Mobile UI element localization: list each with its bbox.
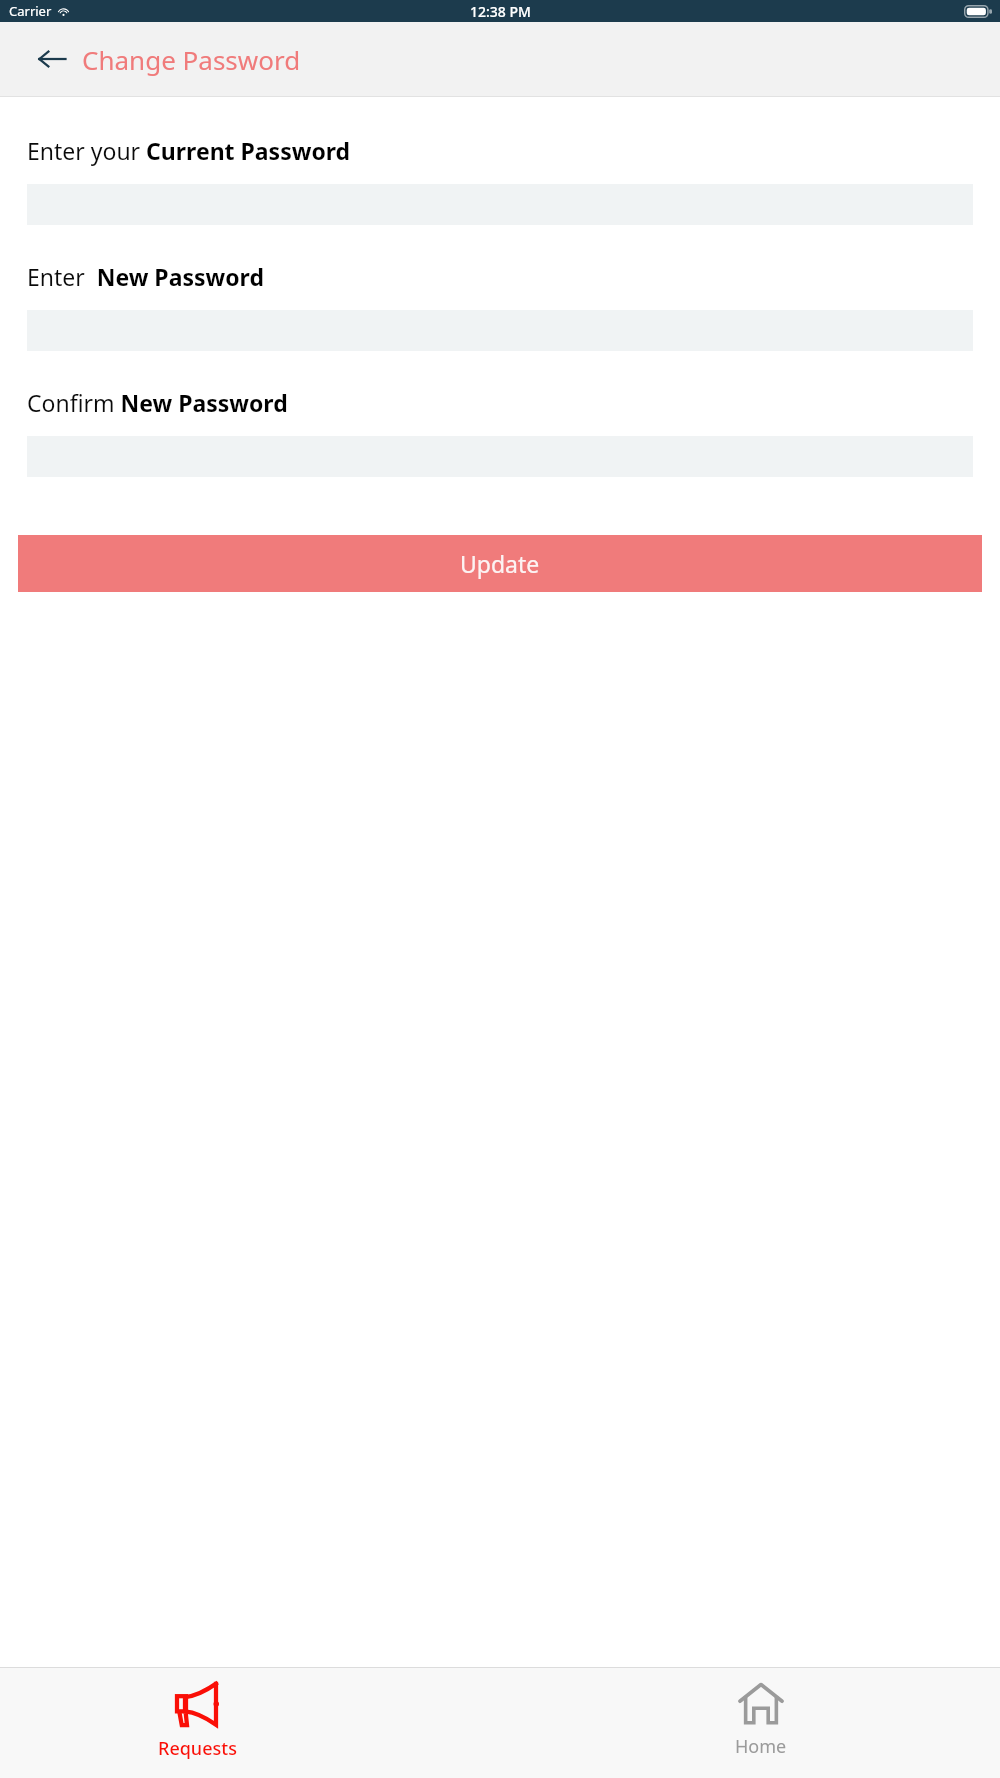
staticText: Home	[735, 1734, 787, 1759]
button[interactable]: Update	[18, 535, 982, 592]
staticText: Confirm New Password	[27, 387, 288, 418]
staticText: Carrier	[9, 2, 52, 20]
staticText: 12:38 PM	[470, 2, 531, 21]
button[interactable]: Requests	[122, 1668, 272, 1761]
staticText: Update	[460, 548, 540, 579]
button[interactable]: Home	[686, 1668, 836, 1759]
button[interactable]: Back	[30, 37, 74, 81]
staticText: Enter your Current Password	[27, 135, 351, 166]
staticText: Change Password	[82, 42, 301, 77]
staticText: Enter New Password	[27, 261, 264, 292]
staticText: Requests	[158, 1736, 237, 1761]
